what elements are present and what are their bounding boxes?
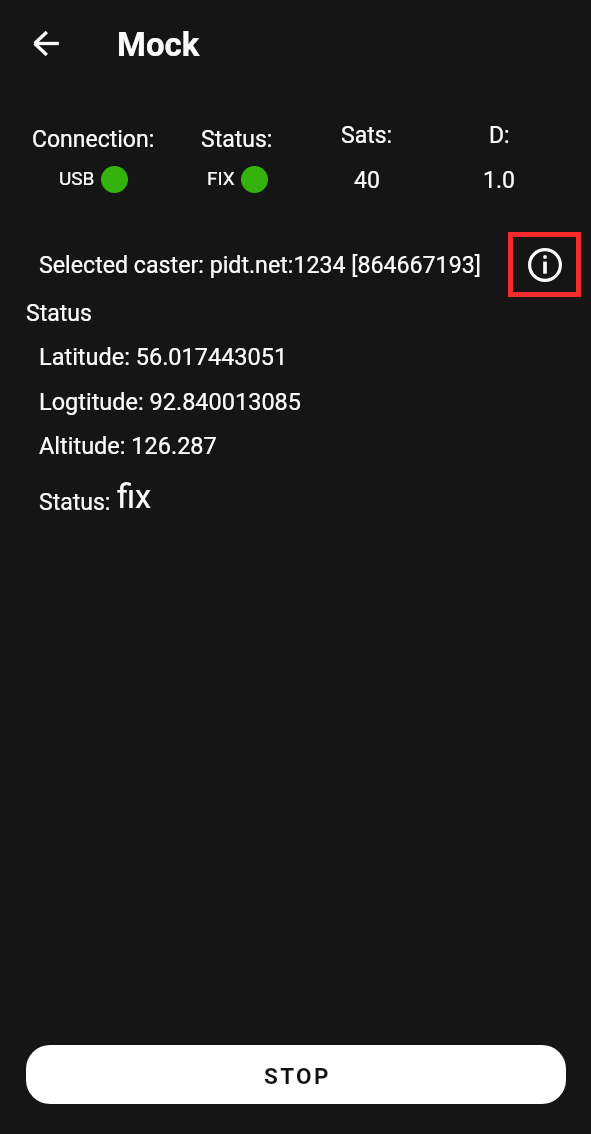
button[interactable]: Selected caster: pidt.net:1234 [86466719… [20,240,490,288]
button[interactable]: STOP [26,1045,566,1104]
button[interactable]: Info [508,232,581,297]
staticText: Status [26,300,92,327]
staticText: Selected caster: pidt.net:1234 [86466719… [39,251,481,278]
staticText: USB [59,167,95,189]
staticText: Sats: [341,122,393,149]
staticText: STOP [264,1063,331,1089]
staticText: Logtitude: 92.840013085 [39,388,302,416]
staticText: fix [117,478,152,516]
staticText: Latitude: 56.017443051 [39,343,288,371]
staticText: Status: [39,489,117,516]
staticText: Mock [117,25,200,64]
staticText: Status: [201,126,273,153]
staticText: Altitude: 126.287 [39,432,217,460]
staticText: Connection: [32,126,155,153]
staticText: 40 [354,167,380,194]
staticText: FIX [207,167,235,189]
staticText: 1.0 [483,167,515,194]
staticText: D: [489,122,510,149]
button[interactable]: Back [18,15,74,71]
